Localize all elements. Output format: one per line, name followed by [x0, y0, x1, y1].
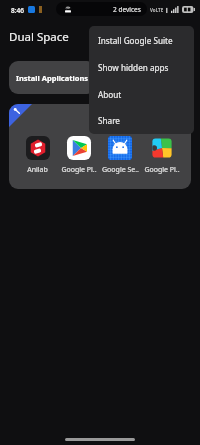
staticText: Install Applications: [16, 73, 89, 83]
button[interactable]: Google Se..: [99, 136, 141, 175]
staticText: Show hidden apps: [98, 62, 169, 73]
staticText: About: [98, 89, 122, 100]
button[interactable]: Google Pl..: [141, 136, 183, 175]
button[interactable]: Install Google Suite: [89, 27, 194, 54]
staticText: Anilab: [27, 165, 48, 175]
staticText: Dual Space: [9, 29, 69, 45]
button[interactable]: Install Applications: [9, 61, 96, 94]
staticText: Install Google Suite: [98, 35, 173, 46]
staticText: Google Se..: [102, 165, 139, 175]
button[interactable]: About: [89, 81, 194, 108]
staticText: Share: [98, 115, 120, 126]
staticText: 2 devices: [113, 5, 141, 14]
button[interactable]: Share: [89, 108, 194, 133]
staticText: Google Pl..: [144, 165, 180, 175]
staticText: 8:46: [11, 6, 24, 15]
button[interactable]: Anilab: [17, 136, 58, 175]
staticText: VoLTE: [150, 7, 164, 13]
button[interactable]: Google Pl..: [58, 136, 99, 175]
button[interactable]: Show hidden apps: [89, 54, 194, 81]
staticText: Google Pl..: [61, 165, 97, 175]
